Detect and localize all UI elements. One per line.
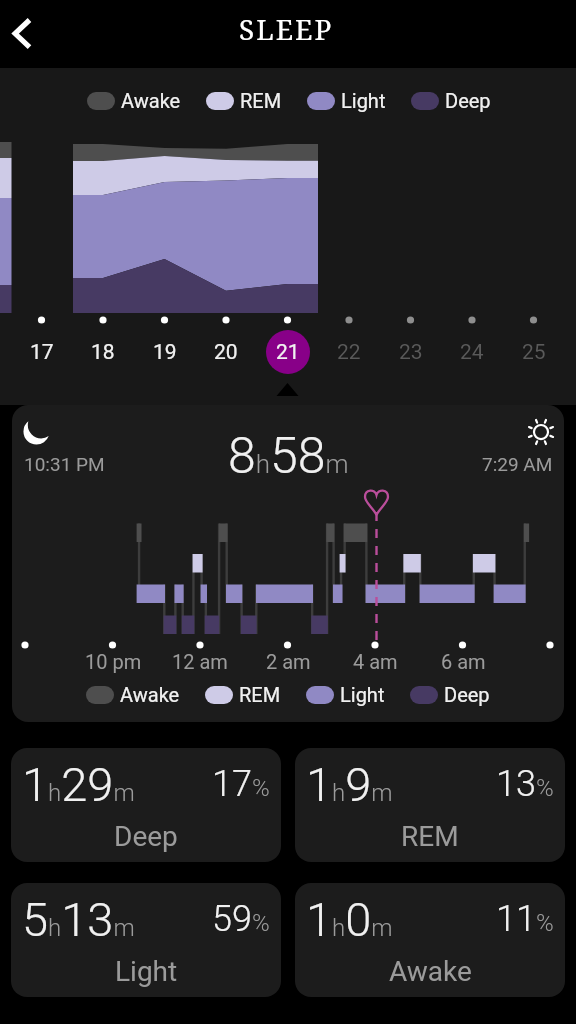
- staticText: 23: [399, 340, 423, 365]
- button[interactable]: Awake: [87, 89, 181, 112]
- staticText: 10 pm: [85, 650, 142, 673]
- staticText: 10:31 PM: [24, 453, 105, 475]
- button[interactable]: 25: [508, 326, 560, 378]
- button[interactable]: 1h9m: [295, 748, 565, 862]
- staticText: 6 am: [441, 650, 486, 673]
- staticText: 8h58m: [228, 427, 349, 486]
- button[interactable]: Light: [306, 683, 385, 706]
- button[interactable]: 1h29m: [11, 748, 281, 862]
- staticText: 1h9m: [306, 757, 393, 812]
- staticText: 18: [91, 340, 115, 365]
- staticText: Deep: [444, 683, 490, 706]
- button[interactable]: 18: [77, 326, 129, 378]
- staticText: 7:29 AM: [482, 453, 553, 475]
- button[interactable]: 23: [385, 326, 437, 378]
- button[interactable]: 21: [262, 326, 314, 378]
- button[interactable]: 1h0m: [295, 883, 565, 997]
- staticText: 25: [522, 340, 546, 365]
- staticText: 5h13m: [22, 892, 135, 947]
- other: Bed time: [22, 417, 51, 446]
- button[interactable]: Deep: [411, 89, 491, 112]
- staticText: 17%: [212, 763, 270, 805]
- button[interactable]: REM: [206, 89, 282, 112]
- button[interactable]: 5h13m: [11, 883, 281, 997]
- staticText: 17: [30, 340, 54, 365]
- staticText: Deep: [445, 89, 491, 112]
- button[interactable]: Light: [307, 89, 386, 112]
- staticText: Awake: [120, 683, 180, 706]
- button[interactable]: 17: [16, 326, 68, 378]
- button[interactable]: REM: [205, 683, 281, 706]
- staticText: 1h29m: [22, 757, 135, 812]
- staticText: Light: [340, 683, 385, 706]
- button[interactable]: 24: [446, 326, 498, 378]
- button[interactable]: 19: [139, 326, 191, 378]
- button[interactable]: 22: [323, 326, 375, 378]
- staticText: 20: [214, 340, 238, 365]
- staticText: 59%: [212, 898, 270, 940]
- button[interactable]: 20: [200, 326, 252, 378]
- staticText: 13%: [496, 763, 554, 805]
- staticText: 21: [276, 340, 300, 365]
- staticText: 24: [460, 340, 484, 365]
- staticText: 19: [153, 340, 177, 365]
- staticText: REM: [239, 683, 281, 706]
- button[interactable]: Bed time: [12, 405, 564, 722]
- other: Wake time: [528, 419, 554, 445]
- button[interactable]: Awake: [86, 683, 180, 706]
- staticText: 4 am: [353, 650, 398, 673]
- staticText: REM: [401, 820, 459, 853]
- staticText: 2 am: [266, 650, 311, 673]
- button[interactable]: Back: [0, 8, 52, 60]
- staticText: 11%: [496, 898, 554, 940]
- staticText: Deep: [114, 820, 178, 853]
- button[interactable]: Deep: [410, 683, 490, 706]
- staticText: Awake: [121, 89, 181, 112]
- staticText: REM: [240, 89, 282, 112]
- staticText: 1h0m: [306, 892, 393, 947]
- staticText: Light: [115, 955, 178, 988]
- staticText: 22: [337, 340, 361, 365]
- staticText: Light: [341, 89, 386, 112]
- staticText: SLEEP: [239, 10, 334, 48]
- staticText: 12 am: [172, 650, 228, 673]
- staticText: Awake: [389, 955, 472, 988]
